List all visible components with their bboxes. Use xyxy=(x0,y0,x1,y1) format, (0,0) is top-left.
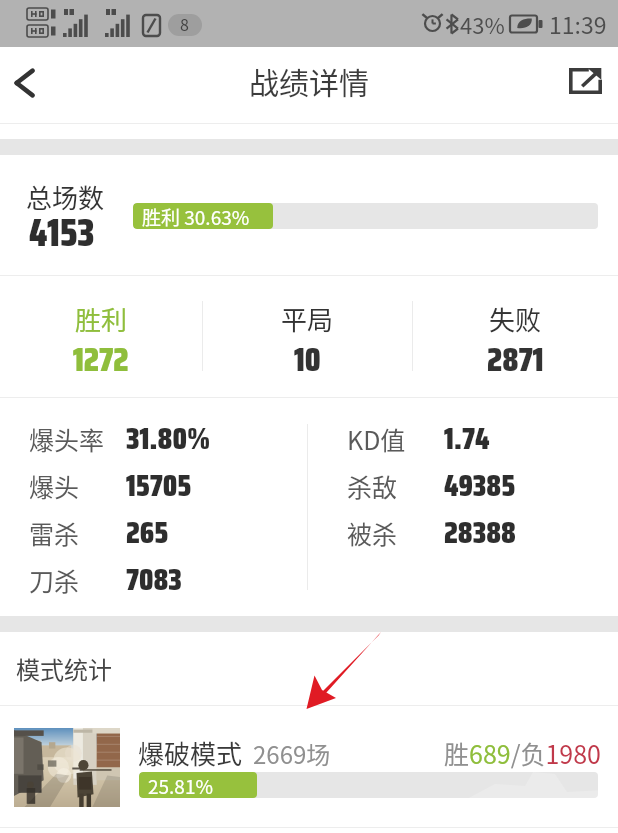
staticText: 1272 xyxy=(73,334,129,386)
staticText: 被杀 xyxy=(347,515,398,551)
staticText: 49385 xyxy=(444,462,516,509)
staticText: 28388 xyxy=(444,509,516,556)
staticText: 爆头率 xyxy=(29,421,105,457)
staticText: 11:39 xyxy=(549,7,607,40)
button[interactable]: Back xyxy=(0,53,62,119)
staticText: 10 xyxy=(294,334,321,386)
staticText: 平局 xyxy=(281,300,334,338)
staticText: 15705 xyxy=(126,462,192,509)
staticText: 25.81% xyxy=(148,772,213,798)
staticText: 刀杀 xyxy=(29,562,80,598)
staticText: KD值 xyxy=(347,421,406,457)
button[interactable]: Share xyxy=(556,53,618,119)
staticText: 265 xyxy=(126,509,169,556)
staticText: 胜利 xyxy=(75,300,128,338)
staticText: 2669场 xyxy=(253,736,331,771)
staticText: 2871 xyxy=(487,334,544,386)
staticText: 7083 xyxy=(126,556,182,603)
staticText: 雷杀 xyxy=(29,515,80,551)
staticText: 43% xyxy=(460,8,505,40)
staticText: 4153 xyxy=(29,203,95,263)
button[interactable]: 平局 xyxy=(203,276,412,397)
staticText: 爆破模式 xyxy=(138,734,243,772)
staticText: 胜689/负1980 xyxy=(444,735,601,771)
button[interactable]: 胜利 xyxy=(0,276,202,397)
staticText: 胜利 30.63% xyxy=(142,203,250,229)
staticText: 爆头 xyxy=(29,468,80,504)
staticText: 模式统计 xyxy=(16,651,112,686)
staticText: 失败 xyxy=(489,300,542,338)
staticText: 31.80% xyxy=(126,415,211,462)
staticText: 战绩详情 xyxy=(249,59,369,102)
button[interactable]: 爆破模式 xyxy=(0,706,618,827)
staticText: 8 xyxy=(180,12,189,35)
button[interactable]: 失败 xyxy=(413,276,618,397)
staticText: 1.74 xyxy=(444,415,490,462)
staticText: 总场数 xyxy=(26,178,105,216)
staticText: 杀敌 xyxy=(347,468,398,504)
